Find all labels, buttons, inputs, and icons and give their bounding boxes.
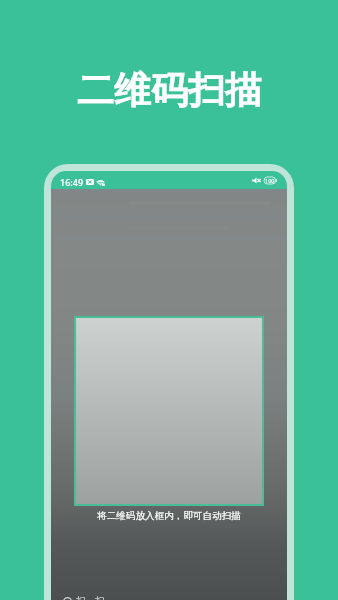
other: Screenshot blocked — [86, 179, 94, 185]
staticText: 二维码扫描 — [77, 67, 262, 114]
other: Silent mode — [252, 177, 261, 184]
staticText: 扫一扫 — [76, 595, 105, 600]
button[interactable]: 扫一扫 — [58, 590, 110, 600]
staticText: 100 — [265, 177, 275, 184]
other: Wi-Fi — [96, 179, 105, 186]
other: Battery 100 percent — [264, 177, 277, 184]
staticText: 16:49 — [60, 176, 84, 188]
button[interactable]: Scan viewfinder — [74, 316, 264, 506]
staticText: 将二维码放入框内，即可自动扫描 — [97, 510, 241, 522]
